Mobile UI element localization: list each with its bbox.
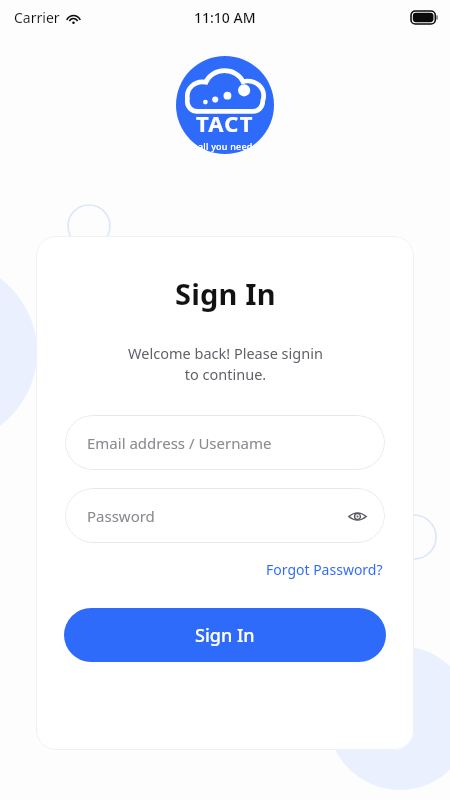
staticText: Sign In (175, 274, 276, 313)
staticText: Forgot Password? (266, 560, 383, 579)
button[interactable]: Show password (342, 501, 372, 531)
staticText: 11:10 AM (194, 8, 256, 27)
button[interactable]: Sign In (64, 608, 386, 662)
staticText: Sign In (195, 623, 255, 648)
button[interactable]: Email address / Username (65, 415, 385, 470)
staticText: Welcome back! Please signin to continue. (128, 343, 323, 385)
button[interactable]: Forgot Password? (264, 557, 385, 582)
staticText: Password (87, 506, 155, 526)
staticText: Email address / Username (87, 433, 272, 453)
staticText: TACT (196, 108, 254, 138)
button[interactable]: Password (65, 488, 385, 543)
staticText: all you need (198, 140, 253, 152)
staticText: Carrier (14, 8, 60, 27)
